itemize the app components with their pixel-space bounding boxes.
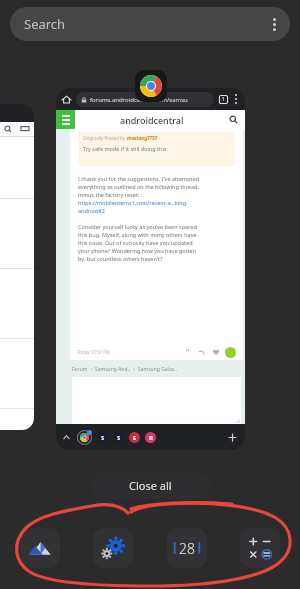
staticText: › xyxy=(88,366,95,373)
button[interactable]: More options xyxy=(232,94,240,104)
staticText: Try safe mode if it still doing this xyxy=(83,145,167,152)
staticText: 1 xyxy=(222,96,225,103)
button[interactable]: Current tab xyxy=(77,430,92,445)
button[interactable]: Settings xyxy=(93,528,133,568)
staticText: Samsung And.. xyxy=(95,366,131,373)
staticText: https://mobilenterns1.com/recent-a...kin… xyxy=(78,199,188,215)
staticText: Close all xyxy=(129,478,172,493)
button[interactable]: Search site xyxy=(229,115,238,124)
staticText: I thank you for the suggestions. I've at… xyxy=(78,175,200,199)
button[interactable]: Home xyxy=(56,88,245,450)
button[interactable]: Menu xyxy=(56,110,75,129)
button[interactable]: Tab E xyxy=(129,432,140,443)
button[interactable]: Expand xyxy=(62,433,71,442)
staticText: E xyxy=(133,434,137,442)
staticText: › xyxy=(131,366,138,373)
staticText: 28 xyxy=(179,539,195,558)
button[interactable]: Chrome xyxy=(135,70,167,102)
button[interactable]: ” xyxy=(186,346,190,358)
staticText: mustang7757 xyxy=(127,135,158,141)
staticText: Consider yourself lucky as you've been s… xyxy=(78,223,197,263)
button[interactable]: LPR xyxy=(0,104,34,430)
staticText: Originally Posted by xyxy=(83,135,127,141)
button[interactable]: Calculator xyxy=(240,528,280,568)
staticText: Search xyxy=(24,15,66,33)
staticText: S xyxy=(101,434,105,442)
button[interactable]: Home xyxy=(61,94,72,105)
button[interactable]: Like xyxy=(212,348,220,356)
staticText: Samsung Galax.. xyxy=(138,366,178,373)
button[interactable]: Thanks xyxy=(225,347,236,358)
button[interactable]: Calendar xyxy=(167,528,207,568)
button[interactable]: New tab xyxy=(226,431,239,444)
staticText: forums.androidcentral.com/samsu xyxy=(90,96,188,104)
button[interactable]: Reply xyxy=(198,349,205,356)
staticText: S xyxy=(117,434,121,442)
staticText: Forum xyxy=(72,366,88,373)
button[interactable]: forums.androidcentral.com/samsu xyxy=(76,92,214,107)
button[interactable]: Tab R xyxy=(145,432,156,443)
button[interactable]: Gallery xyxy=(20,528,60,568)
button[interactable]: Close all xyxy=(90,472,210,499)
button[interactable]: Tab S xyxy=(97,432,108,443)
staticText: R xyxy=(149,434,153,442)
button[interactable]: Search xyxy=(10,7,290,41)
staticText: Today 12:57 PM xyxy=(77,349,111,355)
button[interactable]: Tab S xyxy=(113,432,124,443)
staticText: androidcentral xyxy=(120,114,184,126)
button[interactable]: Tabs xyxy=(218,94,229,105)
